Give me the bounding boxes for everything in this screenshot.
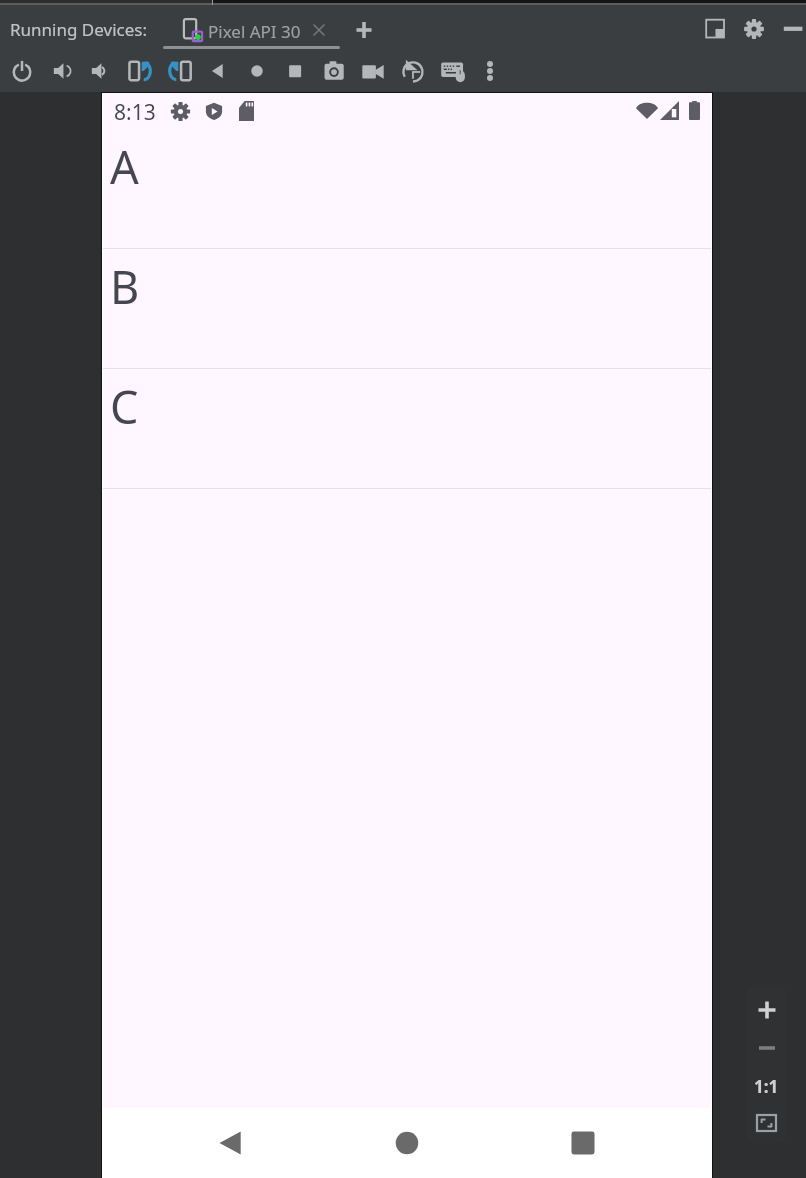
button[interactable]: Record screen <box>354 50 392 92</box>
button[interactable]: Layout <box>697 12 733 48</box>
button[interactable]: Zoom out <box>748 1029 785 1066</box>
button[interactable]: History <box>393 50 431 92</box>
button[interactable]: Add device <box>352 18 376 42</box>
staticText: C <box>110 376 139 437</box>
button[interactable]: Rotate right <box>161 50 199 92</box>
button[interactable]: Volume up <box>43 50 81 92</box>
staticText: Running Devices: <box>10 18 147 41</box>
button[interactable]: B <box>102 249 712 369</box>
button[interactable]: Power <box>3 50 41 92</box>
button[interactable]: Home <box>238 50 276 92</box>
button[interactable]: Volume down <box>81 50 119 92</box>
staticText: B <box>110 256 140 317</box>
button[interactable]: Back <box>199 50 237 92</box>
button[interactable]: Actual size <box>748 1068 785 1105</box>
button[interactable]: Rotate left <box>121 50 159 92</box>
button[interactable]: Settings <box>736 11 772 47</box>
staticText: 8:13 <box>114 98 156 127</box>
button[interactable]: A <box>102 129 712 249</box>
button[interactable]: More options <box>471 50 509 92</box>
button[interactable]: C <box>102 369 712 489</box>
button[interactable]: Minimize <box>775 11 806 47</box>
button[interactable]: Recents <box>557 1117 609 1169</box>
button[interactable]: Zoom in <box>748 991 785 1028</box>
staticText: A <box>110 136 139 197</box>
button[interactable]: Close tab <box>311 22 327 38</box>
button[interactable]: Keyboard <box>433 50 471 92</box>
button[interactable]: Fit to screen <box>748 1104 785 1141</box>
staticText: Pixel API 30 <box>208 20 301 43</box>
button[interactable]: Screenshot <box>315 50 353 92</box>
button[interactable] <box>165 8 333 48</box>
staticText: 1:1 <box>754 1075 779 1098</box>
button[interactable]: Back <box>204 1117 256 1169</box>
button[interactable]: Home <box>381 1117 433 1169</box>
button[interactable]: Overview <box>276 50 314 92</box>
